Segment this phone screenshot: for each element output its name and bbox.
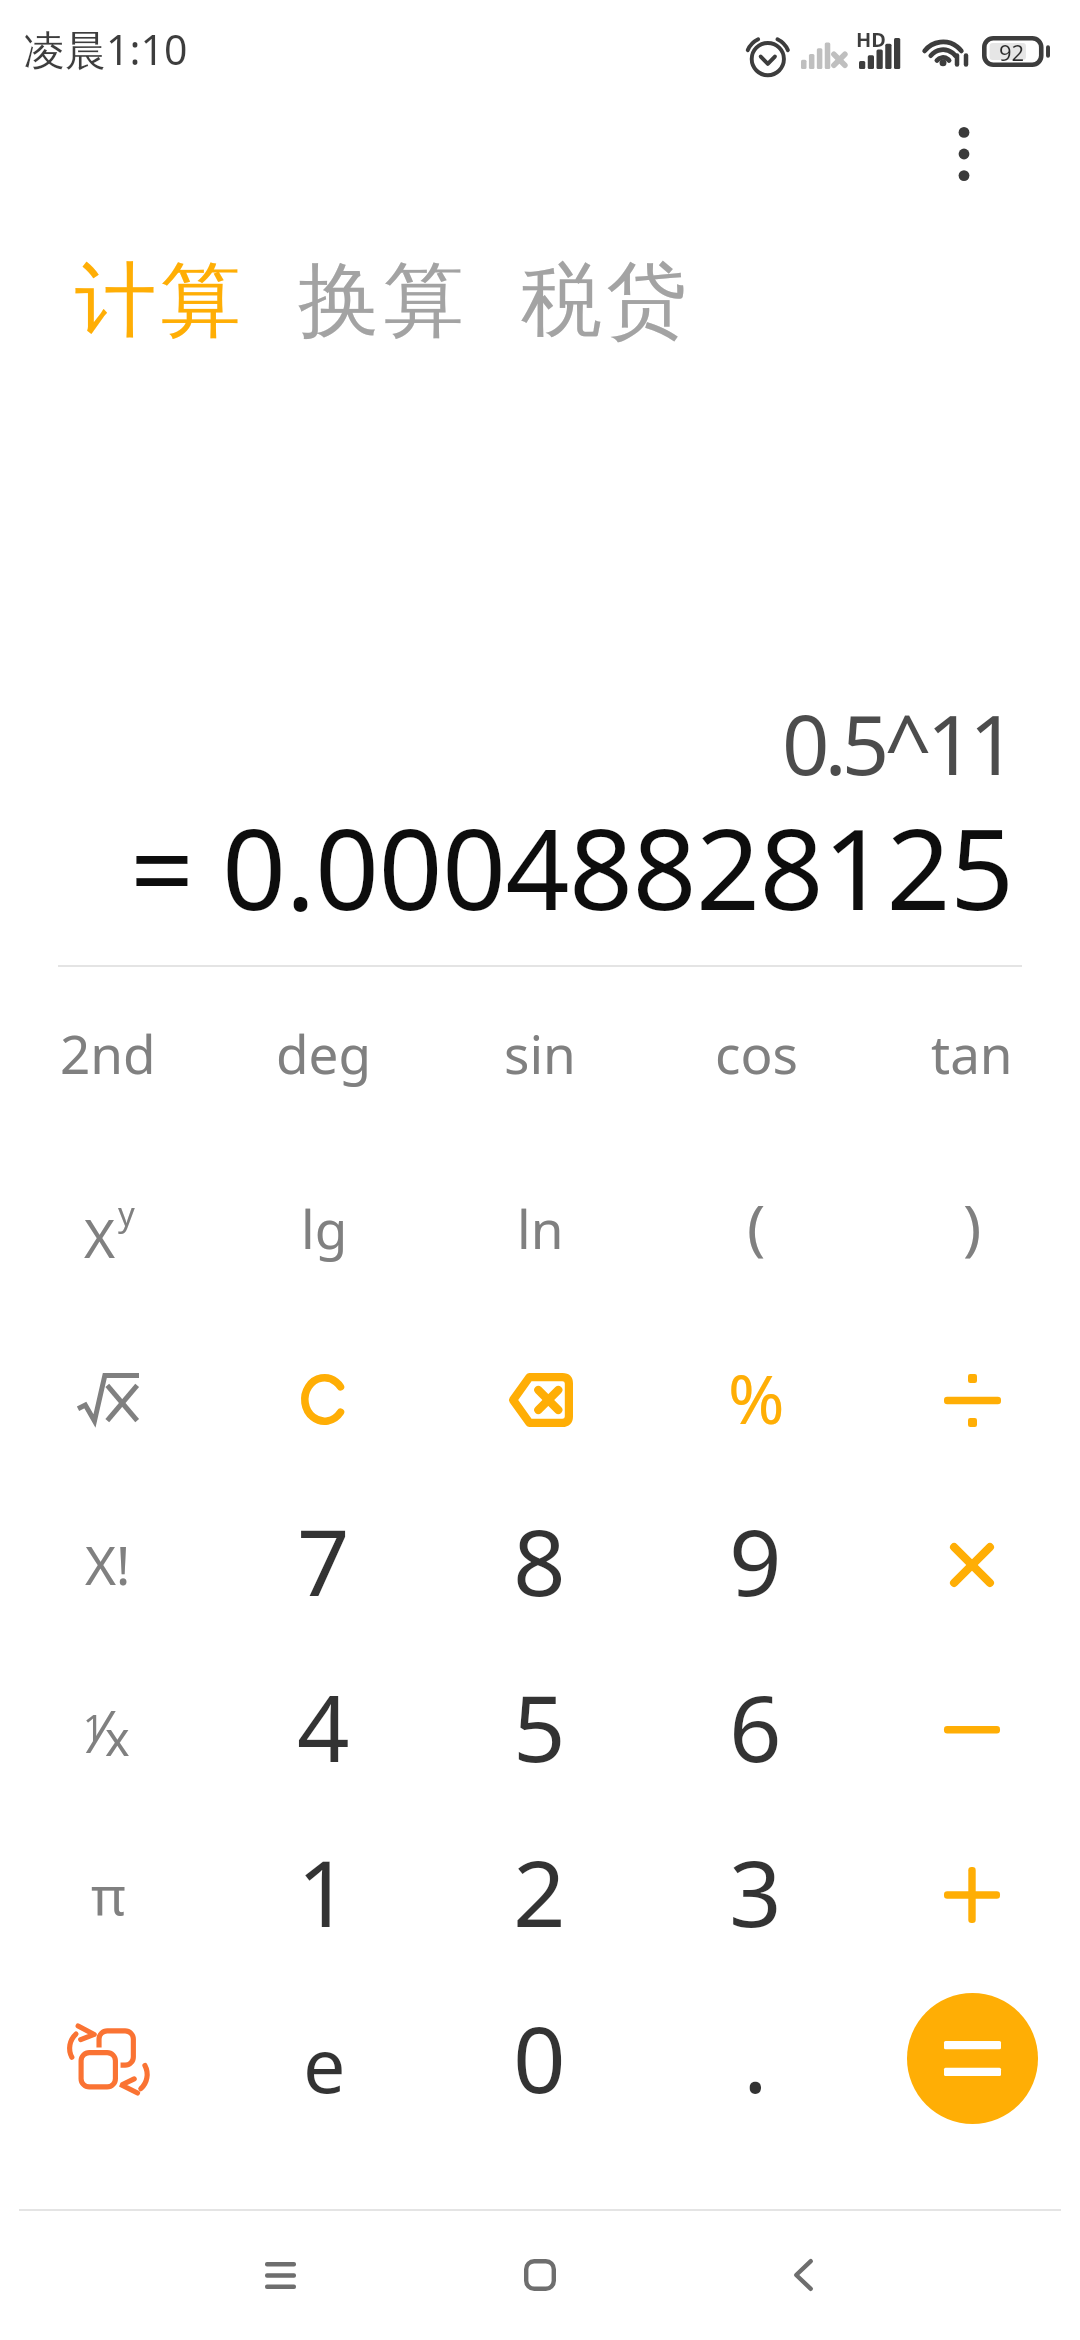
staticText: 92 [999,37,1025,67]
staticText: y [118,1191,135,1236]
staticText: ln [517,1192,564,1264]
button[interactable]: Square root [33,1337,183,1457]
button[interactable]: % [662,1329,851,1465]
button[interactable]: Unit converter [33,1999,183,2119]
button[interactable]: 7 [210,1468,437,1652]
staticText: 0.5^11 [782,686,1012,799]
staticText: 5 [513,1664,566,1789]
staticText: 7 [297,1498,350,1623]
button[interactable]: tan [805,1000,1080,1106]
button[interactable]: 0 [426,1965,653,2149]
button[interactable]: 4 [210,1634,437,1818]
button[interactable]: lg [199,1175,449,1281]
button[interactable]: 6 [642,1634,869,1818]
button[interactable]: One over x [33,1670,183,1790]
button[interactable]: ( [667,1164,845,1286]
staticText: 换算 [298,250,468,352]
staticText: HD [856,26,886,50]
button[interactable]: 3 [642,1799,869,1983]
button[interactable]: Divide [897,1340,1047,1460]
button[interactable]: ) [883,1164,1061,1286]
staticText: 1 [297,1829,350,1954]
button[interactable]: 5 [426,1634,653,1818]
staticText: 0 [513,1995,566,2120]
button[interactable]: deg [157,1000,491,1106]
button[interactable]: Back [723,2215,883,2335]
staticText: 2 [513,1829,566,1954]
button[interactable]: Clear [249,1339,399,1459]
staticText: x [105,1706,130,1770]
staticText: lg [301,1192,348,1264]
staticText: tan [931,1017,1013,1089]
button[interactable]: sin [373,1000,707,1106]
staticText: ) [963,1184,982,1267]
button[interactable]: 9 [642,1468,869,1652]
button[interactable]: 2nd [0,1000,275,1106]
button[interactable]: Equals [907,1993,1038,2124]
button[interactable]: 计算 [69,250,251,352]
staticText: 8 [513,1498,566,1623]
button[interactable]: Plus [897,1835,1047,1955]
staticText: ⁄ [97,1691,105,1770]
staticText: sin [504,1017,576,1089]
staticText: = 0.00048828125 [130,790,1014,943]
button[interactable]: 换算 [292,250,474,352]
staticText: π [91,1858,126,1930]
button[interactable]: Home [460,2215,620,2335]
button[interactable]: e [224,1988,425,2139]
staticText: ( [747,1184,766,1267]
staticText: 凌晨1:10 [24,21,188,77]
staticText: e [303,2012,346,2115]
button[interactable]: X! [0,1511,233,1617]
button[interactable]: Minus [897,1670,1047,1790]
staticText: X [84,1201,116,1273]
staticText: 9 [729,1498,782,1623]
staticText: 3 [729,1829,782,1954]
button[interactable]: More options [920,110,1008,198]
button[interactable]: . [642,1965,869,2149]
button[interactable]: ln [415,1175,665,1281]
staticText: X! [85,1528,131,1600]
button[interactable]: Backspace [465,1340,615,1460]
staticText: 计算 [75,250,245,352]
button[interactable]: Multiply [897,1505,1047,1625]
staticText: deg [276,1017,372,1089]
staticText: 4 [297,1664,350,1789]
button[interactable]: cos [589,1000,923,1106]
staticText: 1 [83,1701,105,1752]
staticText: % [728,1351,785,1444]
button[interactable]: 2 [426,1799,653,1983]
button[interactable]: 税贷 [515,250,697,352]
staticText: 6 [729,1664,782,1789]
button[interactable]: 8 [426,1468,653,1652]
staticText: 税贷 [521,250,691,352]
button[interactable]: 1 [210,1799,437,1983]
button[interactable]: π [26,1841,191,1947]
staticText: . [743,1995,768,2120]
button[interactable]: x to the power y [33,1177,183,1297]
staticText: 2nd [60,1017,156,1089]
staticText: cos [715,1017,798,1089]
button[interactable]: Recent apps [200,2215,360,2335]
